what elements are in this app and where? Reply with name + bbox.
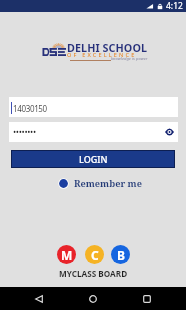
staticText: C — [91, 247, 99, 263]
button[interactable]: LOGIN — [12, 151, 174, 167]
staticText: knowledge is power — [111, 56, 148, 62]
staticText: M — [61, 247, 73, 263]
staticText: 14030150 — [13, 103, 47, 114]
staticText: 4:12 — [166, 0, 183, 12]
staticText: OF EXCELLENCE — [67, 51, 137, 59]
button[interactable]: Home — [81, 287, 105, 310]
button[interactable]: •••••••• — [9, 122, 178, 142]
button[interactable]: Remember me — [58, 177, 142, 190]
staticText: DELHI SCHOOL — [67, 40, 148, 55]
button[interactable]: Recent apps — [135, 287, 159, 310]
button[interactable]: Show password — [165, 125, 174, 139]
staticText: LOGIN — [79, 153, 108, 165]
staticText: B — [117, 247, 125, 263]
button[interactable]: 14030150 — [9, 97, 178, 117]
button[interactable]: Back — [27, 287, 51, 310]
staticText: MYCLASS BOARD — [59, 268, 128, 279]
staticText: Remember me — [74, 177, 142, 190]
staticText: •••••••• — [13, 126, 36, 138]
